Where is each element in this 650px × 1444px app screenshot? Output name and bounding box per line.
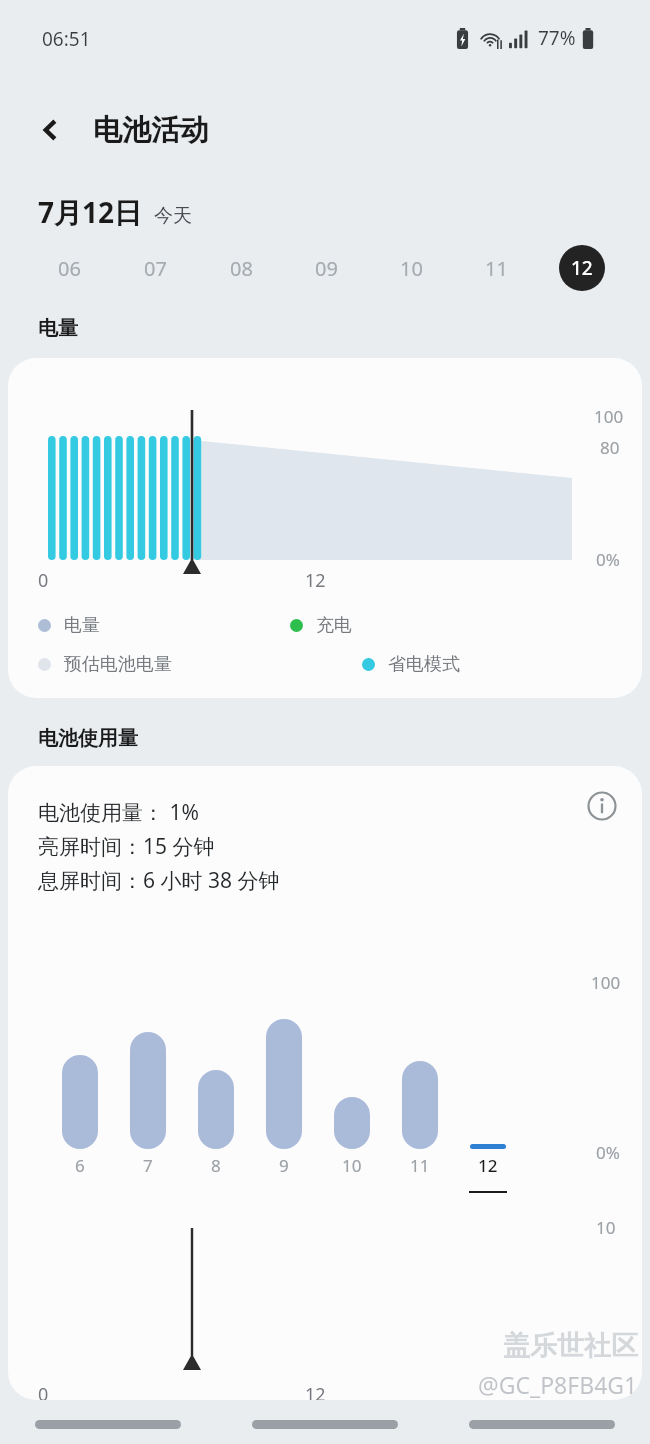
button[interactable]: 电池使用量： 1% xyxy=(8,766,642,1400)
staticText: 11 xyxy=(410,1154,430,1177)
staticText: 100 xyxy=(594,405,624,428)
staticText: 充电 xyxy=(316,614,352,637)
staticText: 电池使用量： 1% xyxy=(38,798,199,827)
staticText: 08 xyxy=(230,255,253,282)
staticText: 12 xyxy=(305,1382,326,1400)
staticText: 息屏时间：6 小时 38 分钟 xyxy=(38,866,280,895)
staticText: 电池使用量 xyxy=(38,726,138,751)
button[interactable]: 12 xyxy=(539,242,624,294)
staticText: 06:51 xyxy=(42,26,91,52)
button[interactable]: Recents xyxy=(0,1404,216,1444)
staticText: 9 xyxy=(279,1154,289,1177)
button[interactable]: Home xyxy=(216,1404,433,1444)
staticText: 6 xyxy=(75,1154,85,1177)
staticText: 100 xyxy=(591,971,621,994)
button[interactable]: 07 xyxy=(112,242,198,294)
button[interactable]: Back xyxy=(24,103,78,157)
staticText: 11 xyxy=(485,255,508,282)
button[interactable]: 09 xyxy=(284,242,369,294)
staticText: 7月12日 xyxy=(38,193,143,231)
staticText: 12 xyxy=(305,568,326,593)
staticText: 0% xyxy=(596,548,620,571)
button[interactable]: 省电模式 xyxy=(362,653,460,676)
staticText: 0 xyxy=(38,1382,49,1400)
staticText: @GC_P8FB4G1 xyxy=(478,1369,638,1400)
staticText: 7 xyxy=(143,1154,153,1177)
staticText: 80 xyxy=(600,436,620,459)
button[interactable]: 06 xyxy=(26,242,112,294)
staticText: 12 xyxy=(478,1154,498,1177)
button[interactable]: 充电 xyxy=(290,614,352,637)
staticText: 06 xyxy=(58,255,81,282)
staticText: 电量 xyxy=(38,316,78,341)
staticText: 10 xyxy=(400,255,423,282)
button[interactable]: 100 xyxy=(8,358,642,698)
staticText: 07 xyxy=(144,255,167,282)
staticText: 电量 xyxy=(64,614,100,637)
button[interactable]: Back xyxy=(433,1404,650,1444)
button[interactable]: 08 xyxy=(198,242,284,294)
button[interactable]: 11 xyxy=(454,242,539,294)
staticText: 盖乐世社区 xyxy=(503,1329,638,1363)
button[interactable]: 电量 xyxy=(38,614,100,637)
staticText: 亮屏时间：15 分钟 xyxy=(38,832,215,861)
staticText: 09 xyxy=(315,255,338,282)
staticText: 77% xyxy=(538,25,576,51)
staticText: 12 xyxy=(571,255,593,281)
button[interactable]: 10 xyxy=(369,242,454,294)
staticText: 10 xyxy=(596,1216,616,1239)
staticText: 今天 xyxy=(154,204,192,228)
staticText: 8 xyxy=(211,1154,221,1177)
staticText: 0% xyxy=(596,1141,620,1164)
button[interactable]: Information xyxy=(580,784,624,828)
staticText: 电池活动 xyxy=(93,112,209,149)
staticText: 0 xyxy=(38,568,49,593)
button[interactable]: 预估电池电量 xyxy=(38,653,172,676)
staticText: 预估电池电量 xyxy=(64,653,172,676)
staticText: 省电模式 xyxy=(388,653,460,676)
staticText: 10 xyxy=(342,1154,362,1177)
